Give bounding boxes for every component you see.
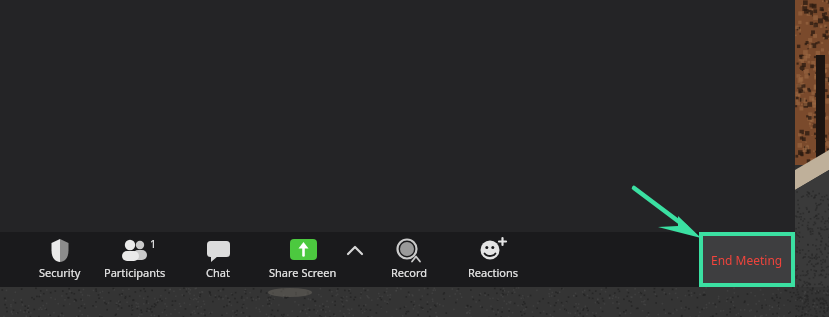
staticText: 1 [150,236,157,251]
staticText: Participants [104,265,166,280]
button[interactable]: Share screen options [341,238,369,262]
button[interactable]: Share Screen [266,232,340,287]
staticText: Reactions [468,265,519,280]
staticText: Security [39,265,81,280]
staticText: Record [391,265,428,280]
button[interactable]: Chat [191,232,245,287]
button[interactable]: Participants [104,232,166,287]
button[interactable]: Security [30,232,90,287]
staticText: Chat [206,265,230,280]
button[interactable]: Reactions [462,232,524,287]
staticText: Share Screen [269,265,337,280]
staticText: End Meeting [711,252,783,268]
button[interactable]: End Meeting [699,232,795,287]
button[interactable]: Record [381,232,437,287]
